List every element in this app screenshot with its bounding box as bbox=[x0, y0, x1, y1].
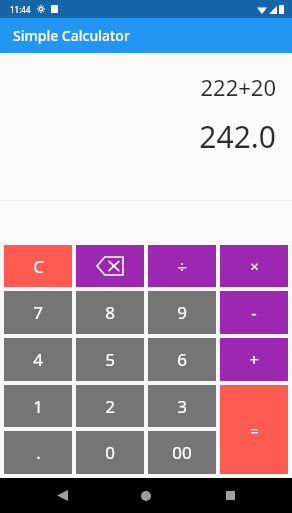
button[interactable]: - bbox=[220, 291, 288, 334]
staticText: ÷ bbox=[177, 255, 187, 278]
staticText: 7 bbox=[33, 301, 43, 324]
staticText: - bbox=[251, 301, 257, 324]
staticText: 6 bbox=[177, 348, 187, 371]
staticText: 222+20 bbox=[200, 72, 276, 102]
button[interactable]: Home bbox=[124, 478, 168, 513]
staticText: 0 bbox=[105, 441, 115, 464]
staticText: 242.0 bbox=[199, 116, 276, 157]
staticText: 11:44 bbox=[10, 4, 31, 15]
button[interactable]: 7 bbox=[4, 291, 72, 334]
staticText: = bbox=[250, 420, 259, 440]
button[interactable]: C bbox=[4, 245, 72, 287]
button[interactable]: 3 bbox=[148, 385, 216, 427]
staticText: + bbox=[249, 348, 259, 371]
button[interactable]: × bbox=[220, 245, 288, 287]
button[interactable]: Recent apps bbox=[208, 478, 252, 513]
button[interactable]: 1 bbox=[4, 385, 72, 427]
button[interactable]: Backspace bbox=[76, 245, 144, 287]
button[interactable]: 00 bbox=[148, 431, 216, 474]
staticText: Simple Calculator bbox=[13, 26, 130, 45]
button[interactable]: 9 bbox=[148, 291, 216, 334]
button[interactable]: . bbox=[4, 431, 72, 474]
button[interactable]: + bbox=[220, 338, 288, 381]
staticText: 2 bbox=[105, 395, 115, 418]
button[interactable]: = bbox=[220, 385, 288, 474]
button[interactable]: 5 bbox=[76, 338, 144, 381]
staticText: 8 bbox=[105, 301, 115, 324]
button[interactable]: ÷ bbox=[148, 245, 216, 287]
button[interactable]: Back bbox=[40, 478, 84, 513]
button[interactable]: 6 bbox=[148, 338, 216, 381]
staticText: C bbox=[33, 255, 44, 278]
button[interactable]: 0 bbox=[76, 431, 144, 474]
button[interactable]: 4 bbox=[4, 338, 72, 381]
staticText: 9 bbox=[177, 301, 187, 324]
staticText: 3 bbox=[177, 395, 187, 418]
staticText: 4 bbox=[33, 348, 43, 371]
staticText: 00 bbox=[172, 441, 192, 464]
staticText: 1 bbox=[33, 395, 43, 418]
staticText: . bbox=[36, 441, 41, 464]
staticText: 5 bbox=[105, 348, 115, 371]
button[interactable]: 2 bbox=[76, 385, 144, 427]
button[interactable]: 8 bbox=[76, 291, 144, 334]
staticText: × bbox=[250, 256, 259, 276]
